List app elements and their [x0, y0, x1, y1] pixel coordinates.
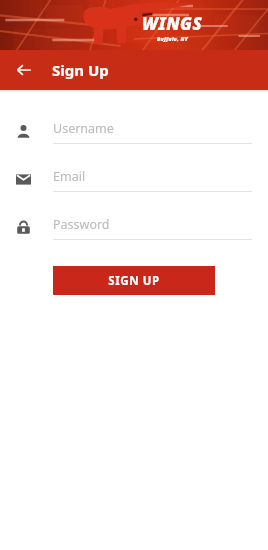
- button[interactable]: Username: [0, 116, 268, 147]
- staticText: Email: [53, 168, 86, 185]
- button[interactable]: Back: [8, 54, 40, 86]
- staticText: SIGN UP: [108, 273, 160, 289]
- button[interactable]: SIGN UP: [53, 266, 215, 295]
- staticText: WINGS: [142, 12, 203, 35]
- button[interactable]: Password: [0, 212, 268, 243]
- staticText: Sign Up: [52, 60, 109, 80]
- button[interactable]: Email: [0, 164, 268, 195]
- staticText: Password: [53, 216, 110, 233]
- staticText: Username: [53, 120, 114, 137]
- staticText: Buffalo, NY: [157, 36, 189, 43]
